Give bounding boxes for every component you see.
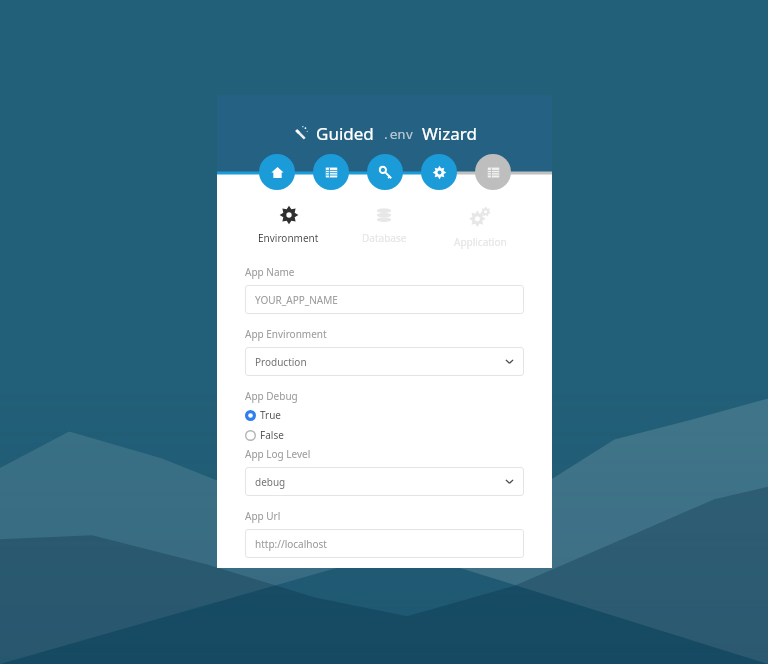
button[interactable]: Database (336, 206, 432, 245)
staticText: Production (255, 355, 307, 369)
button[interactable]: Keys (367, 154, 403, 190)
staticText: App Name (245, 265, 295, 279)
button[interactable]: True (245, 406, 282, 424)
button[interactable]: Home (259, 154, 295, 190)
button[interactable]: False (245, 426, 284, 444)
staticText: False (260, 428, 284, 442)
staticText: YOUR_APP_NAME (255, 293, 338, 307)
staticText: .env (382, 125, 414, 143)
button[interactable]: http://localhost (245, 529, 524, 558)
staticText: Database (362, 231, 407, 245)
button[interactable]: Production (245, 347, 524, 376)
staticText: debug (255, 475, 286, 489)
button[interactable]: YOUR_APP_NAME (245, 285, 524, 314)
staticText: App Url (245, 509, 281, 523)
staticText: Wizard (422, 122, 477, 145)
staticText: True (260, 408, 282, 422)
button[interactable]: debug (245, 467, 524, 496)
button[interactable]: Settings (421, 154, 457, 190)
button[interactable]: Environment (241, 206, 336, 245)
staticText: Environment (258, 231, 319, 245)
button[interactable]: Summary (475, 154, 511, 190)
staticText: App Environment (245, 327, 327, 341)
staticText: App Debug (245, 389, 298, 403)
staticText: Application (454, 235, 507, 249)
staticText: http://localhost (255, 537, 327, 551)
staticText: App Log Level (245, 447, 311, 461)
button[interactable]: Application (432, 206, 528, 249)
button[interactable]: Environment (313, 154, 349, 190)
staticText: Guided (316, 122, 374, 145)
